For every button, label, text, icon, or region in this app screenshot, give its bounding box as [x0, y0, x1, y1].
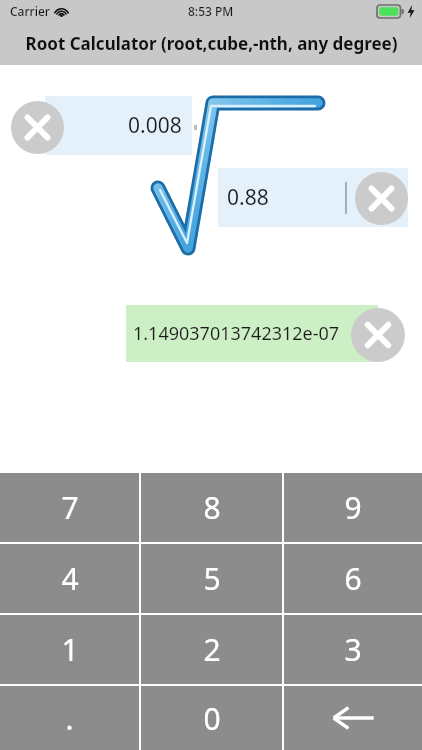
button[interactable]: 5: [141, 544, 282, 613]
staticText: 8: [203, 487, 221, 528]
button[interactable]: 8: [141, 473, 282, 542]
button[interactable]: 9: [284, 473, 422, 542]
button[interactable]: Clear result: [351, 308, 405, 362]
button[interactable]: 2: [141, 615, 282, 684]
button[interactable]: 0.008: [45, 96, 192, 155]
staticText: 7: [61, 487, 79, 528]
button[interactable]: 4: [0, 544, 139, 613]
button[interactable]: 7: [0, 473, 139, 542]
staticText: 0: [203, 698, 221, 739]
staticText: 3: [344, 629, 362, 670]
button[interactable]: Clear degree: [11, 101, 64, 154]
button[interactable]: Clear radicand: [355, 172, 408, 225]
staticText: 1.149037013742312e-07: [133, 321, 340, 346]
staticText: 6: [344, 558, 362, 599]
staticText: 9: [344, 487, 362, 528]
staticText: 8:53 PM: [188, 3, 234, 19]
button[interactable]: .: [0, 686, 139, 750]
staticText: 4: [61, 558, 79, 599]
staticText: 0.008: [128, 111, 182, 140]
button[interactable]: 1.149037013742312e-07: [126, 305, 378, 362]
button[interactable]: 1: [0, 615, 139, 684]
staticText: Carrier: [10, 3, 50, 19]
button[interactable]: Backspace: [284, 686, 422, 750]
button[interactable]: 6: [284, 544, 422, 613]
staticText: 0.88: [227, 183, 269, 212]
staticText: 5: [203, 558, 221, 599]
staticText: 1: [61, 629, 79, 670]
staticText: .: [65, 698, 74, 739]
staticText: 2: [203, 629, 221, 670]
button[interactable]: 0: [141, 686, 282, 750]
staticText: Root Calculator (root,cube,-nth, any deg…: [25, 32, 398, 55]
button[interactable]: 0.88: [218, 168, 408, 227]
button[interactable]: 3: [284, 615, 422, 684]
